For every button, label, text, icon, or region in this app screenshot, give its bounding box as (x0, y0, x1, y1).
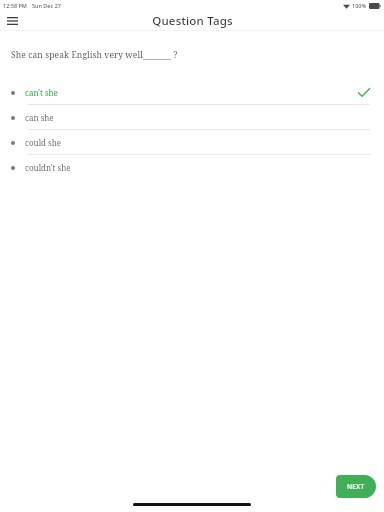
button[interactable]: can't she (0, 80, 384, 105)
button[interactable]: could she (0, 130, 384, 155)
staticText: can't she (25, 87, 58, 98)
staticText: NEXT (347, 482, 365, 491)
staticText: could she (25, 137, 62, 148)
button[interactable]: Open navigation menu (2, 11, 22, 31)
staticText: She can speak English very well_______ ? (11, 49, 178, 61)
staticText: 100% (352, 2, 367, 9)
staticText: Sun Dec 27 (32, 2, 61, 9)
staticText: can she (25, 112, 54, 123)
button[interactable]: NEXT (336, 475, 376, 498)
staticText: 12:58 PM (3, 2, 27, 9)
button[interactable]: couldn't she (0, 155, 384, 180)
staticText: Question Tags (152, 13, 233, 29)
staticText: couldn't she (25, 162, 71, 173)
button[interactable]: can she (0, 105, 384, 130)
